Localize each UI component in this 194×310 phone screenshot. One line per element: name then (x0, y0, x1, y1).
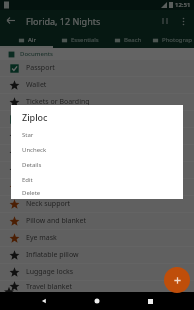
button[interactable]: Back (0, 10, 21, 31)
button[interactable]: Sort (156, 12, 174, 30)
button[interactable]: Phone charger (0, 128, 194, 144)
staticText: Delete (22, 189, 41, 197)
button[interactable]: Details (11, 157, 183, 172)
button[interactable]: More options (174, 12, 192, 30)
staticText: Photograp (162, 36, 192, 44)
staticText: Ziploc (22, 111, 48, 123)
staticText: 12:51 (175, 1, 191, 9)
button[interactable]: Uncheck (11, 142, 183, 157)
staticText: Passport (26, 63, 55, 73)
button[interactable]: Air (0, 31, 53, 48)
staticText: Florida, 12 Nights (26, 15, 101, 27)
button[interactable]: Essentials (53, 31, 106, 48)
button[interactable]: Travel blanket (0, 281, 194, 292)
staticText: Uncheck (22, 146, 47, 154)
staticText: Eye mask (26, 233, 57, 243)
staticText: Beach (124, 36, 142, 44)
staticText: Ziploc (26, 114, 46, 124)
button[interactable]: Luggage locks (0, 264, 194, 280)
staticText: Essentials (71, 36, 99, 44)
button[interactable]: Beach (106, 31, 150, 48)
button[interactable]: Headphones (0, 145, 194, 161)
staticText: Headphones (26, 148, 68, 158)
button[interactable]: Neck support (0, 196, 194, 212)
staticText: Tickets or Boarding (26, 97, 90, 107)
button[interactable]: Pillow and blanket (0, 213, 194, 229)
staticText: Documents (20, 50, 53, 58)
staticText: Snacks (26, 165, 49, 175)
button[interactable]: Snacks (0, 162, 194, 178)
staticText: Travel blanket (26, 282, 72, 292)
staticText: Edit (22, 176, 33, 184)
staticText: Luggage locks (26, 267, 74, 277)
button[interactable]: Delete (11, 187, 183, 199)
staticText: Phone charger (26, 131, 75, 141)
button[interactable]: Water bottle (0, 179, 194, 195)
staticText: Details (22, 161, 42, 169)
staticText: Star (22, 131, 34, 139)
button[interactable]: Wallet (0, 77, 194, 93)
staticText: Wallet (26, 80, 47, 90)
staticText: Air (28, 36, 36, 44)
button[interactable]: Photograp (150, 31, 194, 48)
staticText: Pillow and blanket (26, 216, 87, 226)
staticText: Inflatable pillow (26, 250, 79, 260)
button[interactable]: Home (88, 292, 106, 310)
button[interactable]: Add item (164, 267, 190, 293)
button[interactable]: Star (11, 127, 183, 142)
button[interactable]: Back (35, 292, 53, 310)
button[interactable]: Inflatable pillow (0, 247, 194, 263)
staticText: Water bottle (26, 182, 67, 192)
button[interactable]: Recents (141, 292, 159, 310)
button[interactable]: Passport (0, 60, 194, 76)
button[interactable]: Tickets or Boarding (0, 94, 194, 110)
staticText: Neck support (26, 199, 71, 209)
button[interactable]: Edit (11, 172, 183, 187)
button[interactable]: Ziploc (0, 111, 194, 127)
button[interactable]: Eye mask (0, 230, 194, 246)
